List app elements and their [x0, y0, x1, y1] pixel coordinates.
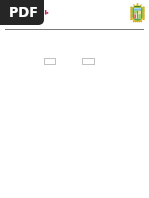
staticText: PDF: [9, 1, 38, 21]
button[interactable]: PDF: [0, 0, 44, 25]
button[interactable]: Annotation mark: [44, 10, 49, 15]
button[interactable]: Form field two: [82, 58, 95, 65]
button[interactable]: Municipal coat of arms: [131, 3, 144, 22]
button[interactable]: Form field one: [44, 58, 56, 65]
